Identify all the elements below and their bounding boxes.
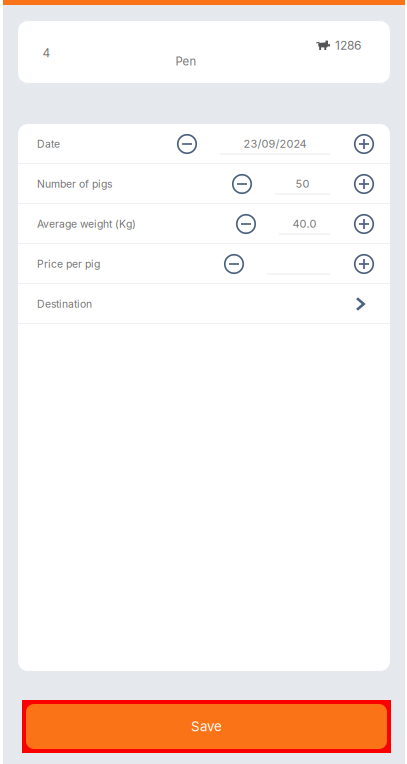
button[interactable]: Increase Price per pig [354, 254, 374, 274]
button[interactable]: Decrease Price per pig [224, 254, 244, 274]
button[interactable]: Average weight (Kg) [18, 204, 390, 244]
button[interactable]: Price per pig [18, 244, 390, 284]
button[interactable]: Decrease Average weight (Kg) [236, 214, 256, 234]
staticText: Average weight (Kg) [37, 218, 136, 230]
button[interactable]: Increase Average weight (Kg) [354, 214, 374, 234]
staticText: Date [37, 138, 60, 150]
staticText: Pen [175, 54, 196, 68]
button[interactable]: Increase Date [354, 134, 374, 154]
button[interactable]: Save [3, 700, 405, 753]
staticText: 40.0 [292, 217, 316, 230]
button[interactable]: Increase Number of pigs [354, 174, 374, 194]
button[interactable]: Decrease Number of pigs [232, 174, 252, 194]
button[interactable]: Decrease Date [177, 134, 197, 154]
staticText: 50 [295, 177, 309, 190]
staticText: 1286 [335, 38, 361, 52]
button[interactable]: 4 [3, 21, 405, 83]
staticText: 23/09/2024 [243, 137, 306, 150]
staticText: Price per pig [37, 258, 100, 270]
staticText: Destination [37, 298, 92, 310]
staticText: 4 [42, 45, 50, 60]
staticText: Save [191, 718, 222, 734]
button[interactable]: Destination [18, 284, 390, 324]
staticText: Number of pigs [37, 178, 112, 190]
button[interactable]: Date [18, 124, 390, 164]
button[interactable]: Number of pigs [18, 164, 390, 204]
